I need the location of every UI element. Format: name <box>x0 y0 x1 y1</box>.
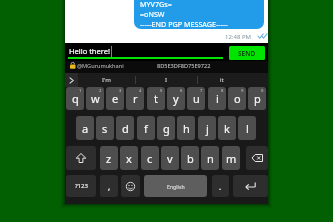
staticText: p <box>254 91 261 106</box>
staticText: English <box>167 183 185 190</box>
button[interactable] <box>246 146 268 170</box>
staticText: t <box>154 91 158 106</box>
staticText: 2 <box>99 88 102 94</box>
button[interactable]: l <box>238 116 256 140</box>
button[interactable]: SEND <box>229 46 265 60</box>
staticText: 3 <box>119 88 122 94</box>
button[interactable]: e <box>106 87 124 110</box>
staticText: a <box>82 121 89 136</box>
staticText: o <box>234 91 241 106</box>
staticText: x <box>126 151 132 166</box>
button[interactable]: u <box>187 87 205 110</box>
button[interactable] <box>66 146 96 170</box>
button[interactable]: d <box>116 116 134 140</box>
staticText: it <box>220 76 224 84</box>
button[interactable]: s <box>96 116 114 140</box>
staticText: d <box>122 121 129 136</box>
staticText: f <box>144 121 148 136</box>
staticText: w <box>91 91 100 106</box>
staticText: 0 <box>261 88 264 94</box>
staticText: I <box>165 76 168 84</box>
button[interactable]: h <box>177 116 195 140</box>
button[interactable]: ?123 <box>66 175 96 197</box>
staticText: e <box>112 91 119 106</box>
button[interactable]: t <box>147 87 165 110</box>
staticText: n <box>207 151 214 166</box>
button[interactable]: English <box>144 175 207 197</box>
button[interactable]: v <box>161 146 179 170</box>
staticText: g <box>163 121 170 136</box>
staticText: 12:48 PM <box>225 33 251 41</box>
button[interactable]: k <box>218 116 236 140</box>
staticText: j <box>206 121 209 136</box>
button[interactable]: , <box>100 175 118 197</box>
staticText: k <box>224 121 230 136</box>
button[interactable]: c <box>141 146 159 170</box>
button[interactable]: n <box>201 146 219 170</box>
staticText: 1 <box>79 88 82 94</box>
button[interactable]: r <box>126 87 144 110</box>
staticText: I'm <box>102 76 111 84</box>
button[interactable]: y <box>167 87 185 110</box>
staticText: 8D5E3DF8D75E9722 <box>157 62 211 70</box>
staticText: q <box>72 91 79 106</box>
staticText: 4 <box>139 88 142 94</box>
staticText: u <box>193 91 200 106</box>
button[interactable]: o <box>228 87 246 110</box>
button[interactable]: . <box>212 175 229 197</box>
button[interactable]: b <box>181 146 199 170</box>
staticText: s <box>102 121 108 136</box>
button[interactable]: a <box>76 116 94 140</box>
staticText: i <box>216 91 219 106</box>
staticText: c <box>147 151 153 166</box>
button[interactable]: I <box>135 73 197 87</box>
button[interactable] <box>121 175 140 197</box>
button[interactable]: p <box>248 87 266 110</box>
button[interactable]: w <box>86 87 104 110</box>
button[interactable]: x <box>120 146 138 170</box>
staticText: v <box>167 151 173 166</box>
staticText: 5 <box>160 88 163 94</box>
staticText: Hello there! <box>69 46 110 56</box>
button[interactable]: j <box>198 116 216 140</box>
staticText: b <box>187 151 194 166</box>
staticText: ?123 <box>75 182 88 190</box>
button[interactable]: it <box>197 73 247 87</box>
button[interactable]: f <box>137 116 155 140</box>
button[interactable]: m <box>222 146 240 170</box>
staticText: m <box>226 151 237 166</box>
button[interactable]: z <box>100 146 118 170</box>
button[interactable] <box>233 175 268 197</box>
button[interactable]: g <box>157 116 175 140</box>
staticText: r <box>133 91 138 106</box>
staticText: MYV7Gs= =oNSW -----END PGP MESSAGE----- <box>140 0 228 28</box>
staticText: . <box>219 181 222 192</box>
staticText: SEND <box>238 49 256 58</box>
staticText: 7 <box>200 88 203 94</box>
staticText: @MGurumukhani <box>77 62 124 70</box>
button[interactable]: q <box>66 87 84 110</box>
staticText: z <box>106 151 112 166</box>
staticText: , <box>108 181 111 192</box>
button[interactable]: MYV7Gs= =oNSW -----END PGP MESSAGE----- <box>134 0 264 29</box>
staticText: 8 <box>221 88 224 94</box>
staticText: y <box>173 91 179 106</box>
button[interactable]: I'm <box>78 73 135 87</box>
staticText: l <box>246 121 249 136</box>
staticText: h <box>183 121 190 136</box>
button[interactable]: i <box>208 87 226 110</box>
staticText: 6 <box>180 88 183 94</box>
staticText: 9 <box>241 88 244 94</box>
button[interactable] <box>65 73 78 87</box>
